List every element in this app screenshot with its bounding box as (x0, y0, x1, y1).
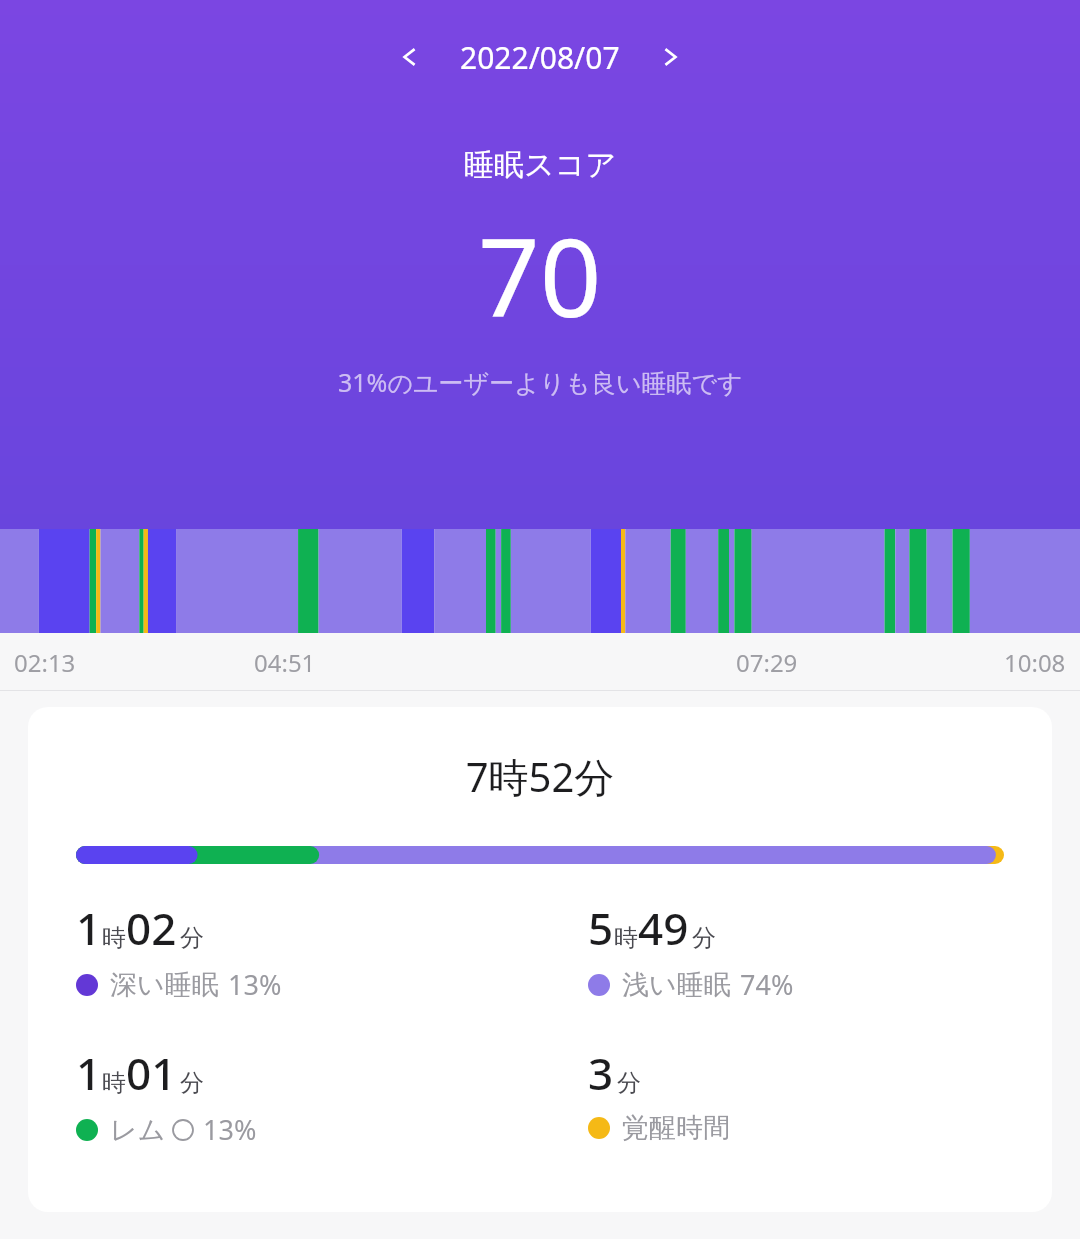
staticText: 時 (102, 1068, 126, 1098)
staticText: 7時52分 (28, 749, 1052, 804)
other: REM info (172, 1119, 194, 1141)
staticText: 31%のユーザーよりも良い睡眠です (338, 365, 743, 399)
staticText: 睡眠スコア (464, 146, 617, 184)
staticText: 時 (614, 923, 638, 953)
staticText: 5 (588, 898, 614, 958)
staticText: 分 (617, 1068, 641, 1098)
staticText: 74% (740, 966, 794, 1003)
staticText: 覚醒時間 (622, 1111, 730, 1145)
staticText: 3 (588, 1043, 614, 1103)
staticText: 分 (180, 923, 204, 953)
button[interactable]: 1 (28, 898, 540, 1003)
button[interactable]: Previous day (382, 30, 436, 84)
staticText: 2022/08/07 (460, 37, 620, 78)
staticText: レム (110, 1113, 166, 1147)
staticText: 02:13 (14, 646, 76, 679)
staticText: 浅い睡眠 (622, 968, 731, 1002)
staticText: 70 (478, 202, 602, 349)
button[interactable]: 5 (540, 898, 1052, 1003)
staticText: 13% (228, 966, 282, 1003)
staticText: 02 (126, 898, 177, 958)
button[interactable]: 7時52分 (28, 707, 1052, 1212)
staticText: 分 (180, 1068, 204, 1098)
staticText: 04:51 (254, 646, 316, 679)
staticText: 時 (102, 923, 126, 953)
staticText: 49 (638, 898, 689, 958)
staticText: 1 (76, 898, 102, 958)
staticText: 13% (203, 1111, 257, 1148)
staticText: 01 (126, 1043, 177, 1103)
button[interactable]: Next day (644, 30, 698, 84)
staticText: 深い睡眠 (110, 968, 219, 1002)
button[interactable]: 1 (28, 1043, 540, 1148)
staticText: 分 (692, 923, 716, 953)
staticText: 10:08 (1004, 646, 1066, 679)
button[interactable]: 3 (540, 1043, 1052, 1145)
staticText: 07:29 (736, 646, 798, 679)
staticText: 1 (76, 1043, 102, 1103)
